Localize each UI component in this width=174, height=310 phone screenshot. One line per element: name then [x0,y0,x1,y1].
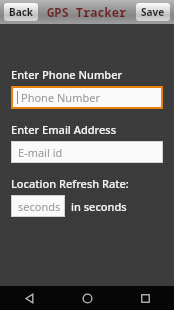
button[interactable]: Save [136,3,170,21]
staticText: GPS Tracker [47,4,127,20]
button[interactable]: Back [0,286,58,310]
button[interactable]: E-mail id [12,142,162,162]
staticText: E-mail id [18,145,63,160]
button[interactable]: seconds [12,196,64,216]
staticText: Location Refresh Rate: [11,176,129,191]
staticText: Save [141,5,165,19]
button[interactable]: Back [4,3,38,21]
staticText: Back [9,5,33,19]
staticText: seconds [18,199,61,214]
staticText: Phone Number [21,90,100,105]
button[interactable]: Recent apps [116,286,174,310]
staticText: in seconds [71,199,127,214]
staticText: Enter Email Address [11,122,116,137]
button[interactable]: Phone Number [13,88,161,107]
staticText: Enter Phone Number [11,67,123,82]
button[interactable]: Home [58,286,116,310]
